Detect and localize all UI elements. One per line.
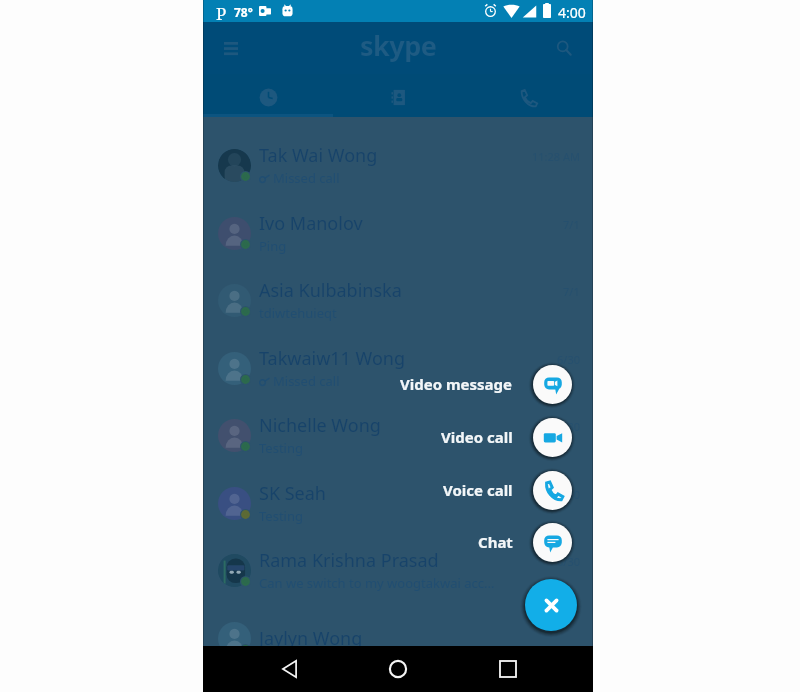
staticText: Rama Krishna Prasad: [259, 548, 439, 573]
staticText: Testing: [259, 439, 303, 457]
button[interactable]: Home: [375, 646, 421, 692]
button[interactable]: Jaylyn Wong: [203, 604, 593, 672]
button[interactable]: Recent: [203, 74, 333, 117]
staticText: Missed call: [273, 372, 340, 390]
button[interactable]: Voice call: [443, 466, 576, 514]
staticText: 4:00: [558, 3, 586, 22]
staticText: Can we switch to my woogtakwai acc...: [259, 574, 495, 592]
staticText: Video message: [400, 374, 513, 394]
button[interactable]: Contacts: [333, 74, 463, 117]
button[interactable]: Nichelle Wong: [203, 401, 593, 469]
staticText: Voice call: [443, 480, 513, 500]
staticText: 6/30: [557, 554, 580, 569]
staticText: Ivo Manolov: [259, 211, 363, 236]
button[interactable]: Video call: [441, 413, 576, 461]
staticText: Jaylyn Wong: [259, 626, 363, 651]
button[interactable]: Ivo Manolov: [203, 199, 593, 267]
staticText: Missed call: [273, 169, 340, 187]
button[interactable]: Back: [266, 646, 312, 692]
button[interactable]: Search: [547, 31, 581, 65]
button[interactable]: Tak Wai Wong: [203, 131, 593, 199]
staticText: Testing: [259, 507, 303, 525]
button[interactable]: Close menu: [519, 573, 583, 637]
button[interactable]: Video message: [400, 360, 576, 408]
staticText: Asia Kulbabinska: [259, 278, 402, 303]
staticText: 6/30: [557, 352, 580, 367]
staticText: P: [216, 2, 227, 24]
staticText: Chat: [478, 532, 513, 552]
button[interactable]: Menu: [214, 31, 248, 65]
button[interactable]: Recent apps: [485, 646, 531, 692]
button[interactable]: SK Seah: [203, 469, 593, 537]
button[interactable]: Rama Krishna Prasad: [203, 536, 593, 604]
staticText: SK Seah: [259, 481, 326, 506]
staticText: skype: [360, 27, 437, 64]
staticText: tdiwtehuieqt: [259, 304, 337, 322]
staticText: 78°: [234, 4, 253, 20]
button[interactable]: Dialpad: [463, 74, 593, 117]
staticText: Nichelle Wong: [259, 413, 381, 438]
staticText: Video call: [441, 427, 513, 447]
button[interactable]: Takwaiw11 Wong: [203, 334, 593, 402]
button[interactable]: Chat: [478, 518, 576, 566]
staticText: 6/30: [557, 487, 580, 502]
staticText: Takwaiw11 Wong: [259, 346, 406, 371]
staticText: Tak Wai Wong: [259, 143, 378, 168]
button[interactable]: Asia Kulbabinska: [203, 266, 593, 334]
staticText: Ping: [259, 237, 287, 255]
staticText: 6/30: [557, 419, 580, 434]
